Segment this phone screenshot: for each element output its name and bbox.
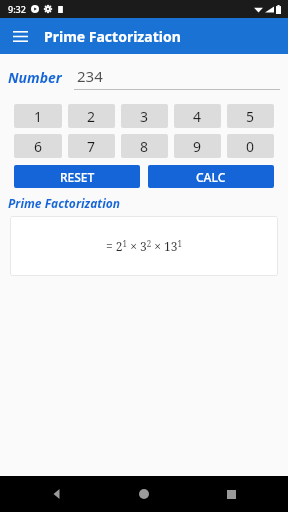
button[interactable]: Recent apps <box>220 483 242 505</box>
button[interactable]: 6 <box>14 134 62 158</box>
button[interactable]: RESET <box>14 165 140 188</box>
button[interactable]: 3 <box>121 104 168 128</box>
button[interactable]: 7 <box>68 134 115 158</box>
button[interactable]: Back <box>46 483 68 505</box>
staticText: CALC <box>196 169 226 185</box>
button[interactable]: Menu <box>6 22 34 50</box>
staticText: 7 <box>87 137 96 156</box>
staticText: Prime Factorization <box>44 27 181 46</box>
staticText: Prime Factorization <box>8 195 121 211</box>
staticText: 2 <box>87 107 96 126</box>
staticText: 3 <box>140 107 149 126</box>
staticText: 5 <box>246 107 255 126</box>
staticText: 1 <box>34 107 43 126</box>
button[interactable]: 0 <box>227 134 274 158</box>
staticText: RESET <box>60 169 95 185</box>
staticText: 9:32 <box>8 3 26 15</box>
staticText: = 21 × 32 × 131 <box>106 238 182 254</box>
button[interactable]: 4 <box>174 104 221 128</box>
staticText: 0 <box>246 137 255 156</box>
staticText: 6 <box>34 137 43 156</box>
staticText: 9 <box>193 137 202 156</box>
button[interactable]: 8 <box>121 134 168 158</box>
button[interactable]: 1 <box>14 104 62 128</box>
staticText: Number <box>8 68 62 87</box>
staticText: 234 <box>77 66 103 86</box>
staticText: 4 <box>193 107 202 126</box>
button[interactable]: 2 <box>68 104 115 128</box>
staticText: 8 <box>140 137 149 156</box>
button[interactable]: 5 <box>227 104 274 128</box>
button[interactable]: 9 <box>174 134 221 158</box>
button[interactable]: Home <box>133 483 155 505</box>
button[interactable]: CALC <box>148 165 274 188</box>
